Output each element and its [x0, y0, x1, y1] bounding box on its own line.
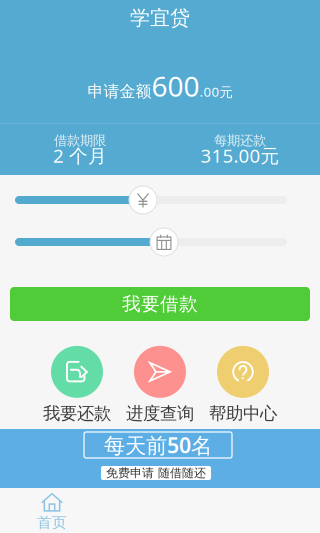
- staticText: 2 个月: [53, 143, 107, 168]
- staticText: 进度查询: [126, 403, 194, 424]
- button[interactable]: 进度查询: [119, 346, 201, 424]
- staticText: 帮助中心: [209, 403, 277, 424]
- staticText: 我要借款: [122, 292, 198, 315]
- button[interactable]: 我要还款: [36, 346, 118, 424]
- staticText: 我要还款: [43, 403, 111, 424]
- button[interactable]: 首页: [20, 492, 84, 532]
- button[interactable]: 我要借款: [10, 287, 310, 321]
- staticText: 首页: [37, 513, 67, 531]
- staticText: 600: [151, 67, 199, 105]
- staticText: 学宜贷: [130, 6, 190, 30]
- staticText: .00元: [199, 83, 232, 100]
- button[interactable]: 帮助中心: [202, 346, 284, 424]
- staticText: 借款期限: [54, 132, 106, 149]
- staticText: 每天前50名: [104, 431, 212, 459]
- staticText: 免费申请 随借随还: [106, 466, 206, 480]
- staticText: 315.00元: [200, 143, 279, 168]
- staticText: 每期还款: [214, 132, 266, 149]
- staticText: 申请金额: [87, 82, 151, 101]
